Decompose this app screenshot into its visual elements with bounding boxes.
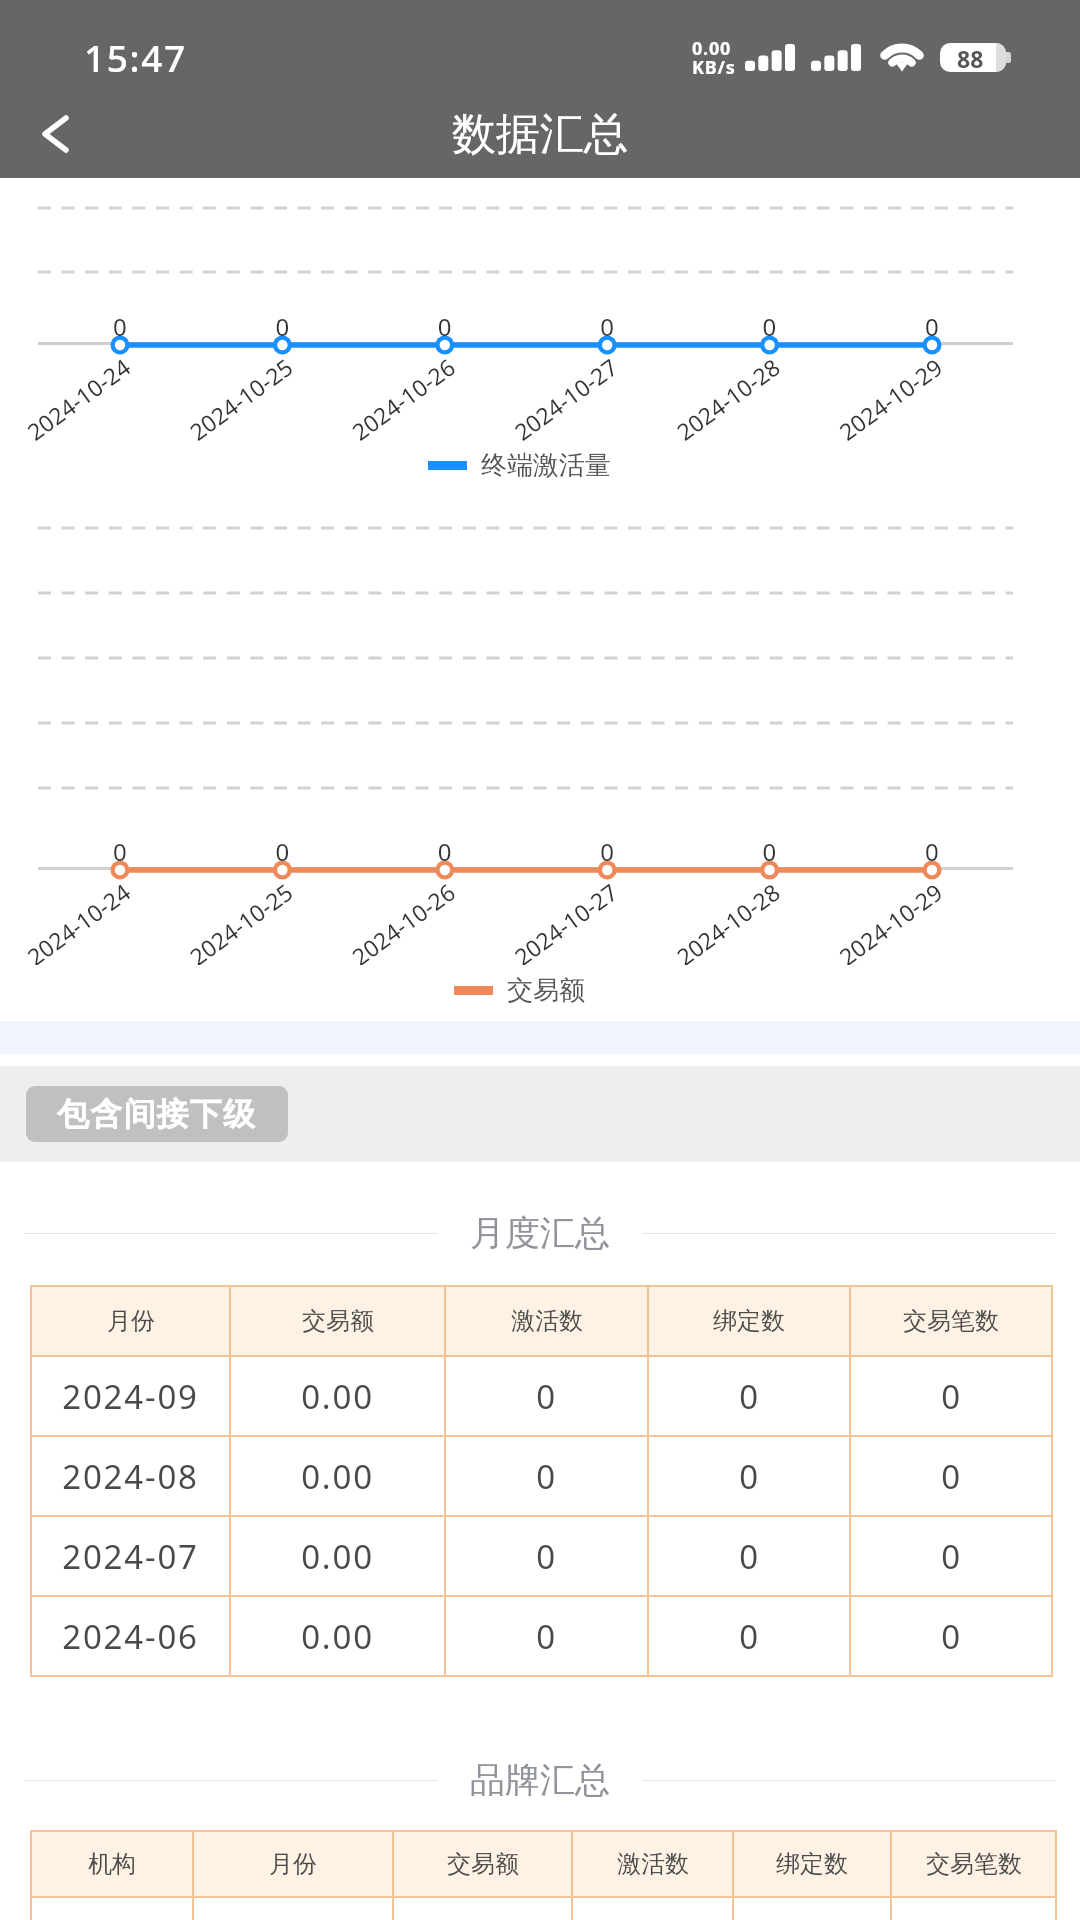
staticText: 交易笔数 [926, 1849, 1022, 1879]
staticText: 2024-08 [62, 1454, 199, 1499]
staticText: 月份 [107, 1306, 155, 1336]
staticText: 交易笔数 [903, 1306, 999, 1336]
staticText: 0 [739, 1374, 760, 1419]
staticText: 数据汇总 [452, 107, 628, 162]
staticText: 0 [739, 1614, 760, 1659]
staticText: 88 [957, 43, 984, 72]
staticText: 0.00 [301, 1374, 374, 1419]
staticText: 0 [536, 1454, 557, 1499]
staticText: 2024-09 [62, 1374, 199, 1419]
staticText: 0 [536, 1614, 557, 1659]
staticText: 0 [941, 1454, 962, 1499]
staticText: 月度汇总 [470, 1211, 610, 1255]
staticText: 激活数 [617, 1849, 689, 1879]
staticText: 终端激活量 [481, 449, 611, 482]
staticText: 0 [536, 1374, 557, 1419]
staticText: 绑定数 [713, 1306, 785, 1336]
staticText: 0 [941, 1614, 962, 1659]
staticText: 0.00 [692, 36, 732, 61]
staticText: KB/s [692, 55, 736, 80]
staticText: 15:47 [84, 32, 187, 82]
staticText: 0 [941, 1374, 962, 1419]
staticText: 0.00 [301, 1614, 374, 1659]
staticText: 2024-07 [62, 1534, 199, 1579]
staticText: 品牌汇总 [470, 1758, 610, 1802]
staticText: 绑定数 [776, 1849, 848, 1879]
staticText: 交易额 [302, 1306, 374, 1336]
button[interactable]: 包含间接下级 [26, 1086, 288, 1142]
staticText: 0 [941, 1534, 962, 1579]
staticText: 月份 [269, 1849, 317, 1879]
staticText: 0.00 [301, 1454, 374, 1499]
staticText: 0 [739, 1454, 760, 1499]
staticText: 0 [739, 1534, 760, 1579]
staticText: 交易额 [507, 974, 585, 1007]
staticText: 0 [536, 1534, 557, 1579]
staticText: 包含间接下级 [57, 1094, 257, 1134]
button[interactable]: Back [0, 90, 110, 178]
staticText: 2024-06 [62, 1614, 199, 1659]
staticText: 0.00 [301, 1534, 374, 1579]
staticText: 激活数 [511, 1306, 583, 1336]
staticText: 交易额 [447, 1849, 519, 1879]
staticText: 机构 [88, 1849, 136, 1879]
